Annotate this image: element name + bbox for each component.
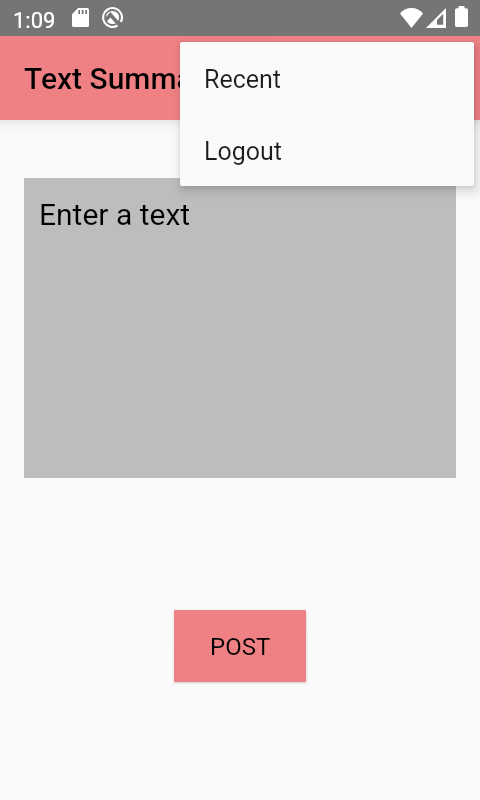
staticText: Logout	[204, 137, 282, 166]
staticText: Enter a text	[39, 197, 191, 232]
staticText: Text Summarizer	[24, 61, 253, 96]
button[interactable]: Recent	[180, 42, 474, 114]
other: Android Auto	[102, 7, 123, 28]
other: Battery	[455, 6, 468, 27]
other: SD card	[72, 8, 89, 27]
staticText: POST	[210, 633, 271, 661]
other: Wi-Fi signal	[400, 8, 423, 28]
button[interactable]: POST	[174, 610, 306, 682]
button[interactable]: Logout	[180, 114, 474, 186]
other: Mobile signal	[426, 8, 446, 28]
staticText: 1:09	[13, 8, 56, 34]
button[interactable]: Enter a text	[24, 178, 456, 478]
staticText: Recent	[204, 65, 281, 94]
